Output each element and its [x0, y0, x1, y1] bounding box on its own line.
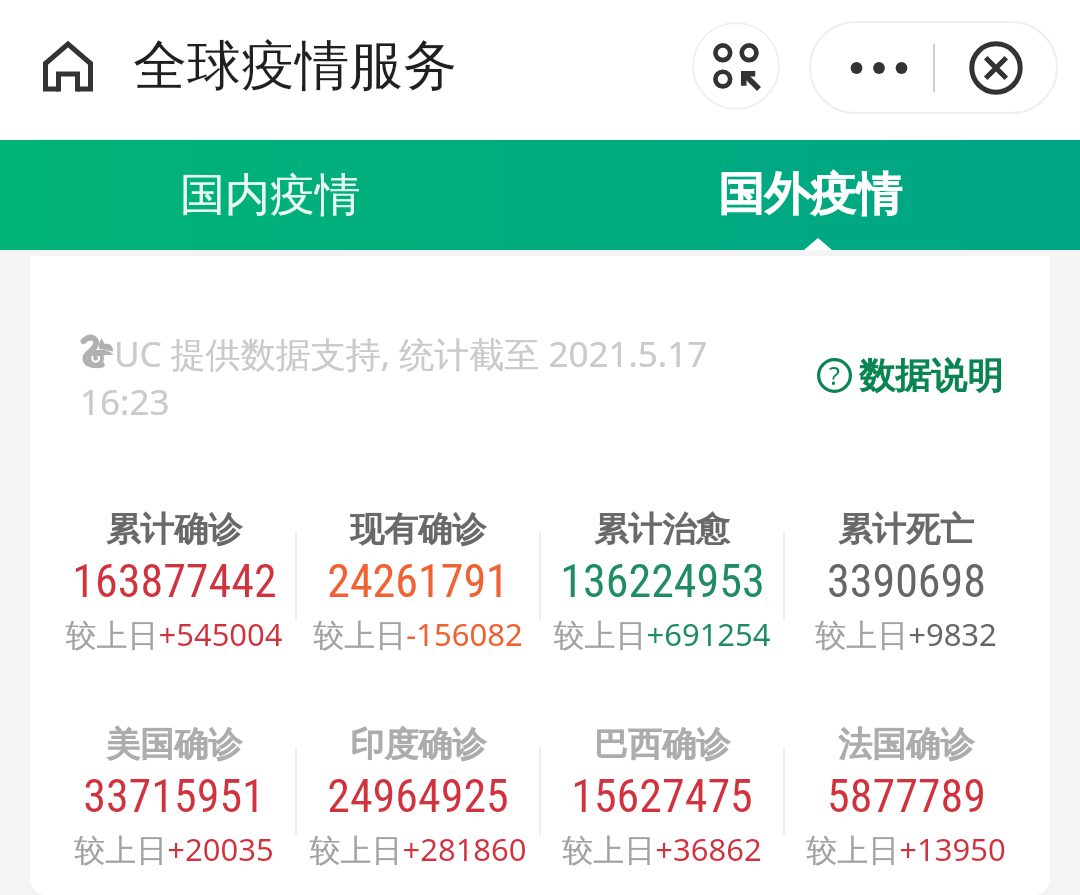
button[interactable]: 累计确诊	[52, 508, 296, 655]
staticText: 全球疫情服务	[133, 32, 457, 100]
staticText: 163877442	[72, 554, 277, 608]
staticText: 较上日+691254	[553, 613, 771, 655]
staticText: 印度确诊	[350, 723, 486, 766]
staticText: 美国确诊	[106, 723, 242, 766]
staticText: 现有确诊	[350, 508, 486, 551]
button[interactable]: 巴西确诊	[540, 723, 784, 870]
staticText: 数据说明	[859, 353, 1003, 398]
staticText: 较上日+9832	[815, 613, 997, 655]
staticText: 136224953	[560, 554, 765, 608]
button[interactable]: Home	[40, 38, 96, 94]
button[interactable]: ?	[817, 353, 1003, 398]
staticText: ?	[829, 358, 840, 392]
button[interactable]: 现有确诊	[296, 508, 540, 655]
staticText: 较上日+20035	[74, 828, 274, 870]
staticText: UC 提供数据支持, 统计截至 2021.5.17	[114, 330, 708, 378]
staticText: 24964925	[327, 769, 509, 823]
staticText: 法国确诊	[838, 723, 974, 766]
button[interactable]: 累计死亡	[784, 508, 1028, 655]
button[interactable]: 印度确诊	[296, 723, 540, 870]
button[interactable]: Close	[935, 22, 1057, 113]
staticText: 国外疫情	[718, 166, 902, 224]
staticText: 3390698	[827, 554, 986, 608]
staticText: 24261791	[327, 554, 509, 608]
staticText: 5877789	[827, 769, 986, 823]
button[interactable]: 累计治愈	[540, 508, 784, 655]
staticText: 较上日+281860	[309, 828, 527, 870]
staticText: 累计死亡	[838, 508, 974, 551]
staticText: 16:23	[80, 378, 170, 426]
button[interactable]: 国外疫情	[540, 140, 1080, 250]
staticText: 较上日-156082	[313, 613, 523, 655]
staticText: 累计治愈	[594, 508, 730, 551]
staticText: 累计确诊	[106, 508, 242, 551]
button[interactable]: Mini program menu	[692, 22, 780, 110]
staticText: 较上日+545004	[65, 613, 283, 655]
staticText: 33715951	[83, 769, 265, 823]
staticText: 15627475	[571, 769, 753, 823]
button[interactable]: 国内疫情	[0, 140, 540, 250]
button[interactable]: More options	[810, 22, 933, 113]
staticText: 较上日+13950	[806, 828, 1006, 870]
button[interactable]: 法国确诊	[784, 723, 1028, 870]
staticText: 巴西确诊	[594, 723, 730, 766]
button[interactable]: 美国确诊	[52, 723, 296, 870]
staticText: 国内疫情	[180, 167, 360, 224]
staticText: 较上日+36862	[562, 828, 762, 870]
